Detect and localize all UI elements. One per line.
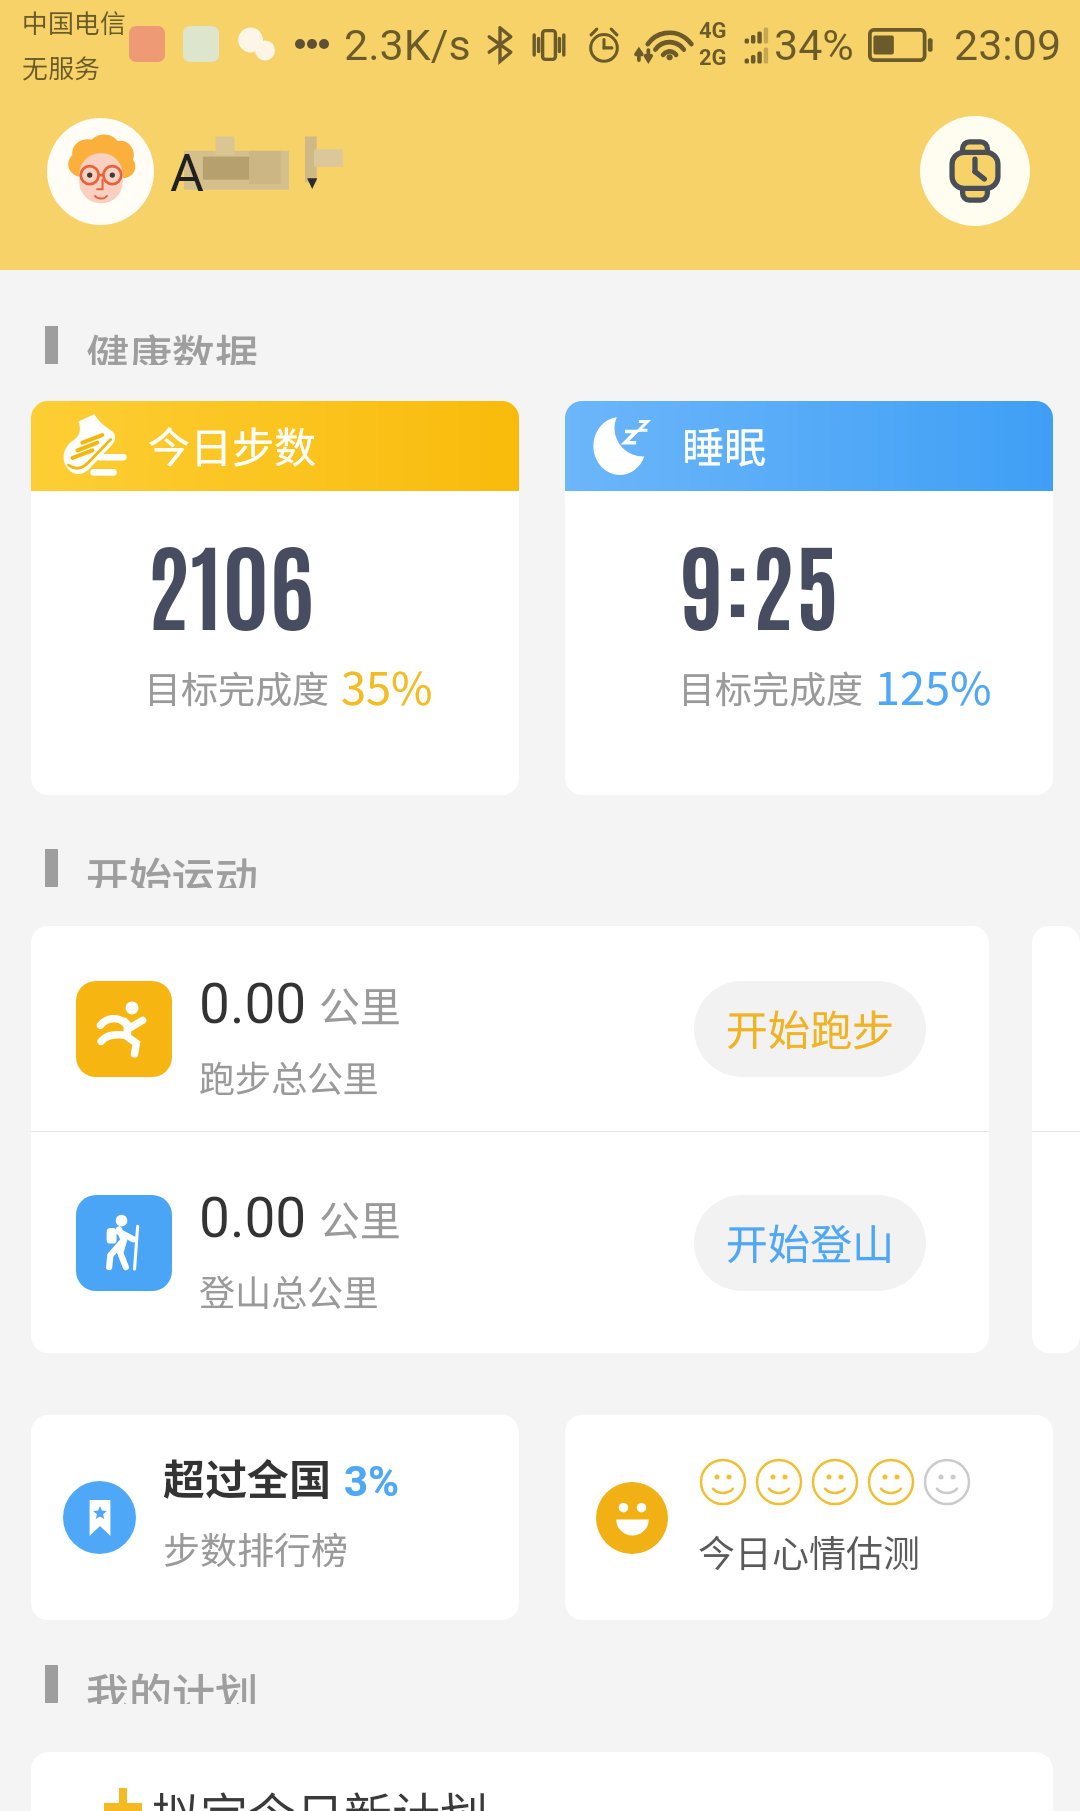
button[interactable]: 拟定今日新计划 [31, 1752, 1053, 1811]
staticText: 23:09 [954, 20, 1062, 70]
staticText: 睡眠 [682, 414, 767, 475]
staticText: 中国电信 [22, 3, 127, 41]
button[interactable]: 超过全国 [31, 1415, 519, 1620]
staticText: 拟定今日新计划 [152, 1777, 489, 1811]
button[interactable]: 睡眠 [565, 401, 1053, 795]
staticText: 0.00 [199, 1186, 307, 1250]
button[interactable]: 开始登山 [694, 1195, 926, 1291]
staticText: 步数排行榜 [163, 1521, 348, 1575]
staticText: 9:25 [680, 519, 840, 643]
staticText: 登山总公里 [199, 1264, 380, 1316]
button[interactable]: Watch device [920, 116, 1030, 226]
staticText: 我的计划 [86, 1660, 258, 1704]
button[interactable]: 0.00 [31, 926, 989, 1131]
staticText: 34% [774, 20, 854, 70]
button[interactable]: 今日步数 [31, 401, 519, 795]
staticText: 2106 [146, 519, 315, 643]
button[interactable]: 开始跑步 [694, 981, 926, 1077]
staticText: 目标完成度 [144, 660, 329, 714]
staticText: 开始登山 [726, 1211, 895, 1272]
button[interactable]: 今日心情估测 [565, 1415, 1053, 1620]
staticText: 无服务 [22, 48, 101, 86]
staticText: 目标完成度 [678, 660, 863, 714]
staticText: A [170, 143, 204, 204]
staticText: 2G [699, 45, 727, 71]
button[interactable]: 0.00 [31, 1132, 989, 1353]
staticText: 超过全国 [163, 1446, 332, 1507]
staticText: 0.00 [199, 972, 307, 1036]
staticText: 2.3K/s [344, 20, 471, 70]
staticText: 3% [344, 1457, 400, 1506]
staticText: 35% [341, 653, 433, 718]
staticText: 今日心情估测 [698, 1524, 920, 1578]
staticText: 今日步数 [148, 414, 317, 475]
staticText: 125% [875, 653, 992, 718]
staticText: 4G [699, 18, 727, 44]
staticText: 开始运动 [86, 844, 258, 888]
staticText: 健康数据 [86, 321, 258, 365]
button[interactable]: Profile [47, 118, 154, 225]
staticText: 跑步总公里 [199, 1050, 380, 1102]
staticText: 开始跑步 [726, 997, 895, 1058]
staticText: 公里 [319, 1188, 401, 1247]
staticText: 公里 [319, 974, 401, 1033]
